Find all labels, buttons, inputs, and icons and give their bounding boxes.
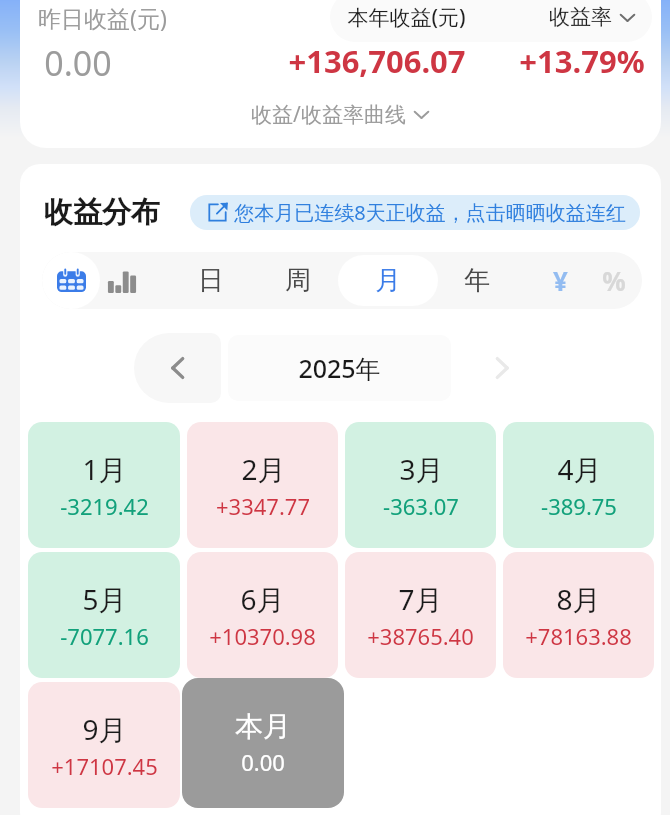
staticText: 0.00 — [44, 40, 112, 86]
staticText: -7077.16 — [60, 621, 149, 651]
button[interactable]: 5月 — [28, 552, 180, 678]
staticText: 收益/收益率曲线 — [251, 100, 406, 129]
staticText: +13.79% — [519, 40, 645, 82]
button[interactable]: 年 — [430, 252, 523, 309]
button[interactable]: Chart view — [94, 252, 149, 309]
button[interactable]: 9月 — [28, 682, 180, 808]
button[interactable]: 月 — [338, 255, 438, 306]
staticText: 9月 — [82, 710, 127, 748]
button[interactable]: 7月 — [345, 552, 496, 678]
staticText: 本月 — [235, 709, 291, 744]
staticText: +17107.45 — [51, 751, 158, 781]
button[interactable]: 本月 — [182, 678, 344, 808]
staticText: +78163.88 — [525, 621, 632, 651]
staticText: -363.07 — [383, 491, 459, 521]
staticText: 5月 — [82, 580, 127, 618]
staticText: 日 — [198, 264, 224, 297]
staticText: +136,706.07 — [288, 40, 466, 82]
button[interactable]: Show percentage — [578, 252, 642, 309]
staticText: % — [602, 263, 626, 298]
button[interactable]: 8月 — [503, 552, 654, 678]
button[interactable]: 4月 — [503, 422, 654, 548]
button[interactable]: 3月 — [345, 422, 496, 548]
staticText: ¥ — [553, 263, 568, 298]
staticText: 周 — [285, 264, 311, 297]
staticText: 月 — [375, 264, 401, 297]
staticText: 3月 — [399, 450, 444, 488]
staticText: 昨日收益(元) — [38, 2, 167, 33]
staticText: 6月 — [240, 580, 285, 618]
staticText: +10370.98 — [209, 621, 316, 651]
button[interactable]: 6月 — [187, 552, 338, 678]
button[interactable]: 1月 — [28, 422, 180, 548]
staticText: 您本月已连续8天正收益，点击晒晒收益连红 — [234, 199, 626, 226]
staticText: 2月 — [241, 450, 286, 488]
button[interactable]: Show amount in yuan — [522, 252, 598, 309]
button[interactable]: 本年收益(元) — [330, 0, 652, 42]
staticText: 4月 — [557, 450, 602, 488]
staticText: 0.00 — [241, 747, 285, 777]
staticText: 本年收益(元) — [347, 3, 466, 32]
staticText: 2025年 — [298, 351, 381, 385]
staticText: 收益分布 — [44, 194, 160, 231]
button[interactable]: 2月 — [187, 422, 338, 548]
button[interactable]: Calendar view — [42, 252, 100, 309]
button[interactable]: 日 — [168, 252, 254, 309]
button[interactable]: 2025年 — [228, 335, 451, 401]
button[interactable]: Previous year — [134, 333, 221, 403]
staticText: 收益率 — [549, 4, 612, 30]
staticText: 年 — [464, 264, 490, 297]
staticText: +3347.77 — [216, 491, 310, 521]
staticText: 1月 — [82, 450, 127, 488]
button[interactable]: 您本月已连续8天正收益，点击晒晒收益连红 — [190, 195, 640, 230]
staticText: 8月 — [556, 580, 601, 618]
staticText: -3219.42 — [60, 491, 149, 521]
staticText: +38765.40 — [367, 621, 474, 651]
staticText: -389.75 — [541, 491, 617, 521]
button[interactable]: 周 — [252, 252, 343, 309]
staticText: 7月 — [398, 580, 443, 618]
